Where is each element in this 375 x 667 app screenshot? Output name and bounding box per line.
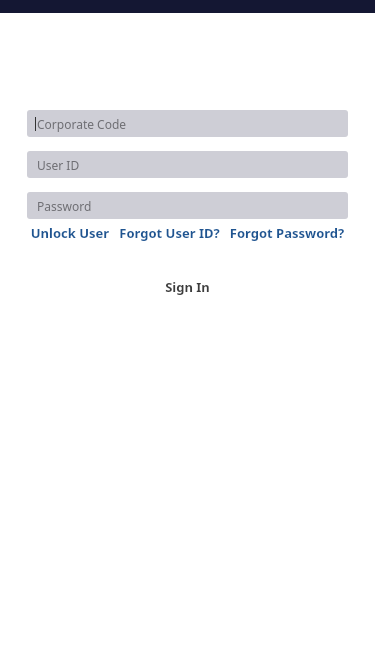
button[interactable]: Corporate Code [27,110,348,137]
staticText: Sign In [165,278,210,296]
staticText: Corporate Code [37,116,127,132]
button[interactable]: Password [27,192,348,219]
staticText: Password [37,198,92,214]
button[interactable]: Sign In [27,278,348,296]
staticText: User ID [37,157,80,173]
staticText: Unlock User Forgot User ID? Forgot Passw… [27,224,348,242]
button[interactable]: Unlock User Forgot User ID? Forgot Passw… [27,224,348,242]
button[interactable]: User ID [27,151,348,178]
